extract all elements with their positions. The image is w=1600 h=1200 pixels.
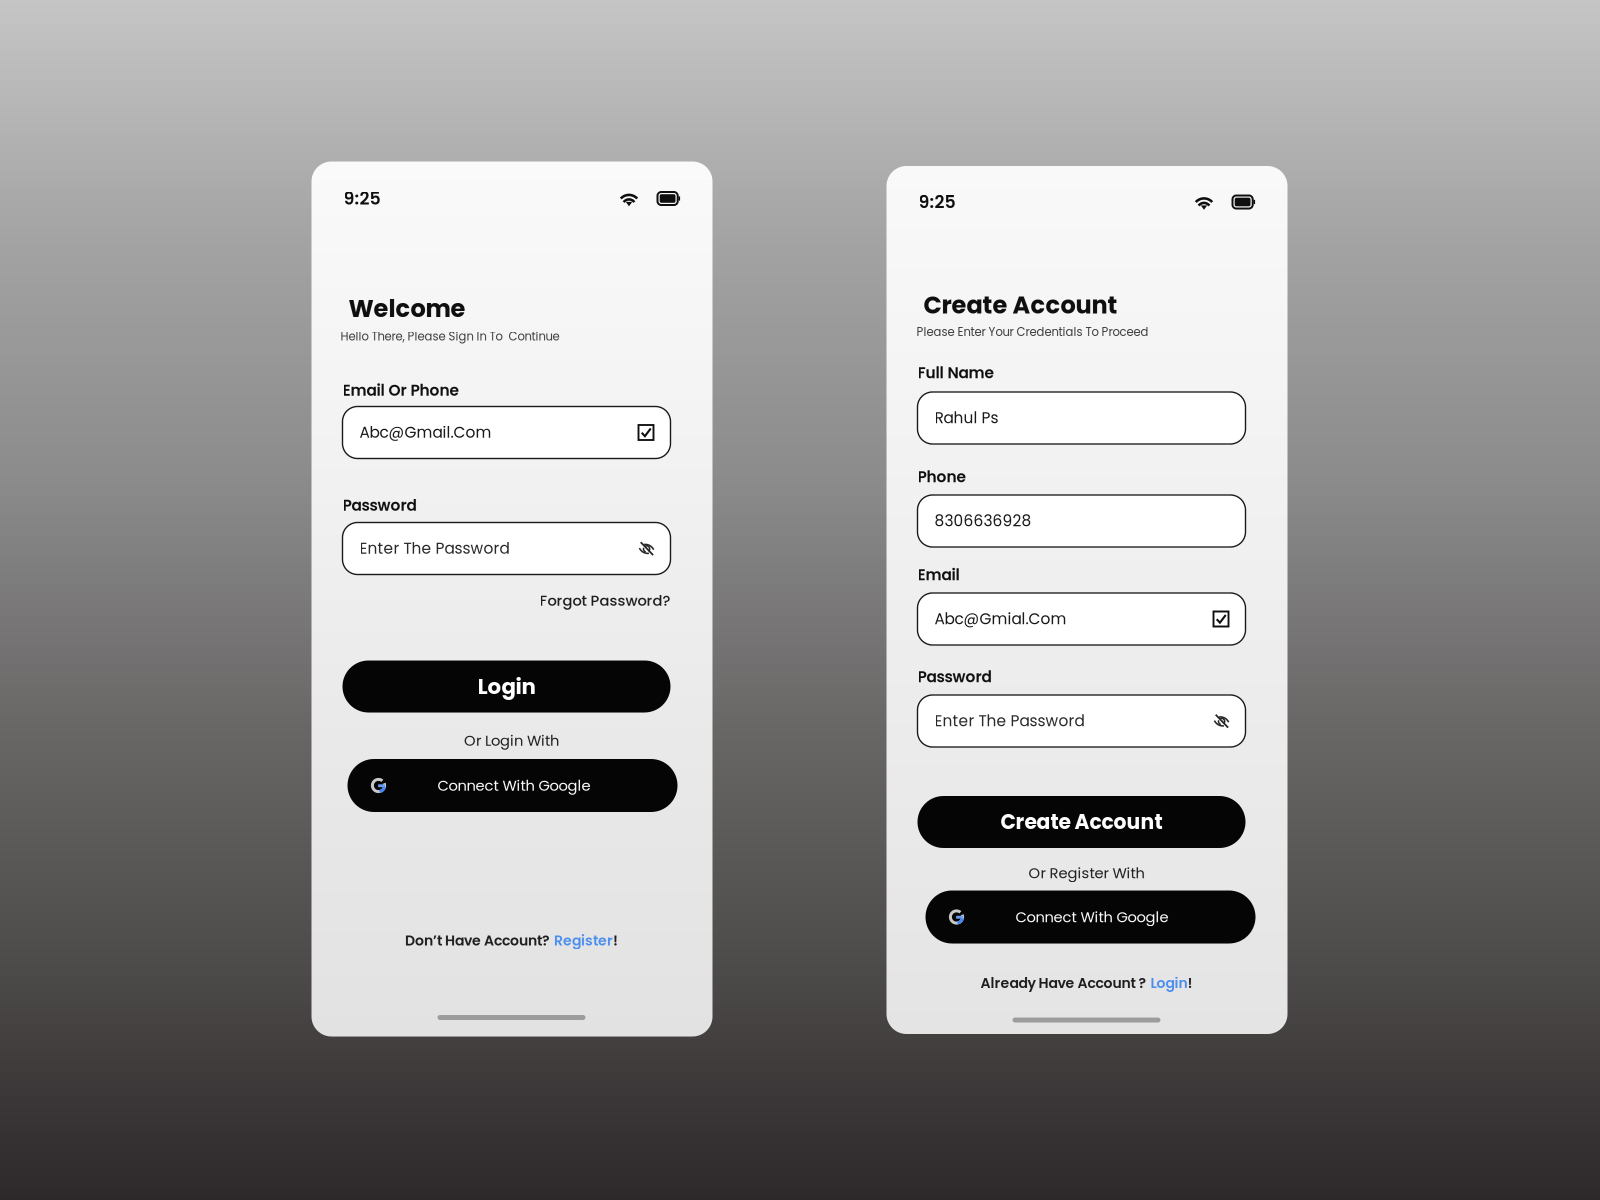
staticText: Already Have Account ? <box>980 973 1146 993</box>
staticText: 9:25 <box>343 186 380 211</box>
staticText: Email <box>917 564 959 586</box>
staticText: Create Account <box>1000 808 1162 836</box>
staticText: Enter The Password <box>359 538 509 559</box>
staticText: ! <box>1187 973 1192 993</box>
button[interactable]: Enter The Password <box>342 522 670 574</box>
button[interactable]: Enter The Password <box>917 695 1245 747</box>
staticText: Connect With Google <box>437 775 590 796</box>
staticText: Or Register With <box>1028 863 1144 883</box>
staticText: Abc@Gmail.Com <box>359 422 491 443</box>
staticText: Password <box>917 666 991 688</box>
staticText: Email Or Phone <box>342 380 458 401</box>
staticText: Don’t Have Account? <box>405 931 550 950</box>
staticText: ! <box>613 931 618 950</box>
staticText: Create Account <box>923 288 1117 322</box>
button[interactable]: Connect With Google <box>347 759 677 812</box>
staticText: Login <box>477 672 535 701</box>
button[interactable]: Abc@Gmail.Com <box>342 406 670 458</box>
staticText: Enter The Password <box>934 710 1084 732</box>
staticText: Phone <box>917 466 965 488</box>
staticText: Login <box>1150 973 1187 993</box>
button[interactable]: Create Account <box>917 796 1245 848</box>
staticText: Please Enter Your Credentials To Proceed <box>916 324 1148 340</box>
button[interactable]: 8306636928 <box>917 495 1245 547</box>
button[interactable]: Login <box>1150 973 1187 993</box>
staticText: Password <box>342 495 416 516</box>
staticText: Full Name <box>917 362 993 384</box>
button[interactable]: Forgot Password? <box>342 588 670 612</box>
staticText: Register <box>554 931 613 950</box>
staticText: 8306636928 <box>934 510 1031 532</box>
button[interactable]: Abc@Gmial.Com <box>917 593 1245 645</box>
staticText: Or Login With <box>464 730 559 751</box>
staticText: Forgot Password? <box>539 590 670 611</box>
button[interactable]: Register <box>554 931 613 950</box>
staticText: Abc@Gmial.Com <box>934 608 1066 630</box>
staticText: Rahul Ps <box>934 407 998 429</box>
staticText: Hello There, Please Sign In To Continue <box>340 328 559 345</box>
button[interactable]: Rahul Ps <box>917 392 1245 444</box>
staticText: Welcome <box>348 292 465 325</box>
button[interactable]: Connect With Google <box>925 890 1255 943</box>
staticText: Connect With Google <box>1015 907 1168 927</box>
button[interactable]: Login <box>342 660 670 712</box>
staticText: 9:25 <box>918 190 955 214</box>
